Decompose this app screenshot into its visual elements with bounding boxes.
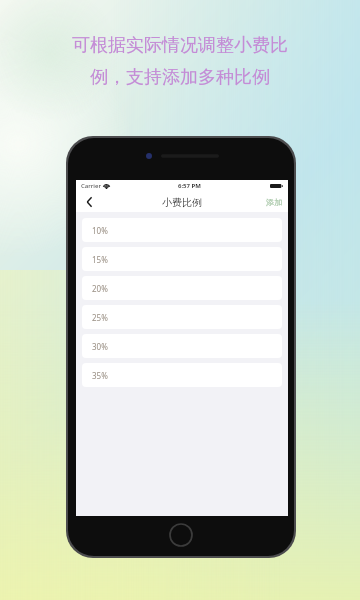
button[interactable]: 20% [82,276,282,300]
staticText: 例，支持添加多种比例 [90,66,270,89]
staticText: 20% [92,283,108,294]
staticText: 25% [92,312,108,323]
staticText: 6:57 PM [178,182,201,190]
staticText: 30% [92,341,108,352]
button[interactable]: 25% [82,305,282,329]
staticText: 可根据实际情况调整小费比 [72,34,288,57]
staticText: 10% [92,225,108,236]
button[interactable]: 15% [82,247,282,271]
button[interactable]: 10% [82,218,282,242]
button[interactable]: 35% [82,363,282,387]
staticText: 添加 [266,197,282,207]
staticText: 小费比例 [162,196,202,209]
staticText: 15% [92,254,108,265]
button[interactable]: 30% [82,334,282,358]
staticText: Carrier [81,182,101,190]
button[interactable]: Back [76,192,102,212]
button[interactable]: 添加 [260,194,288,210]
staticText: 35% [92,370,108,381]
